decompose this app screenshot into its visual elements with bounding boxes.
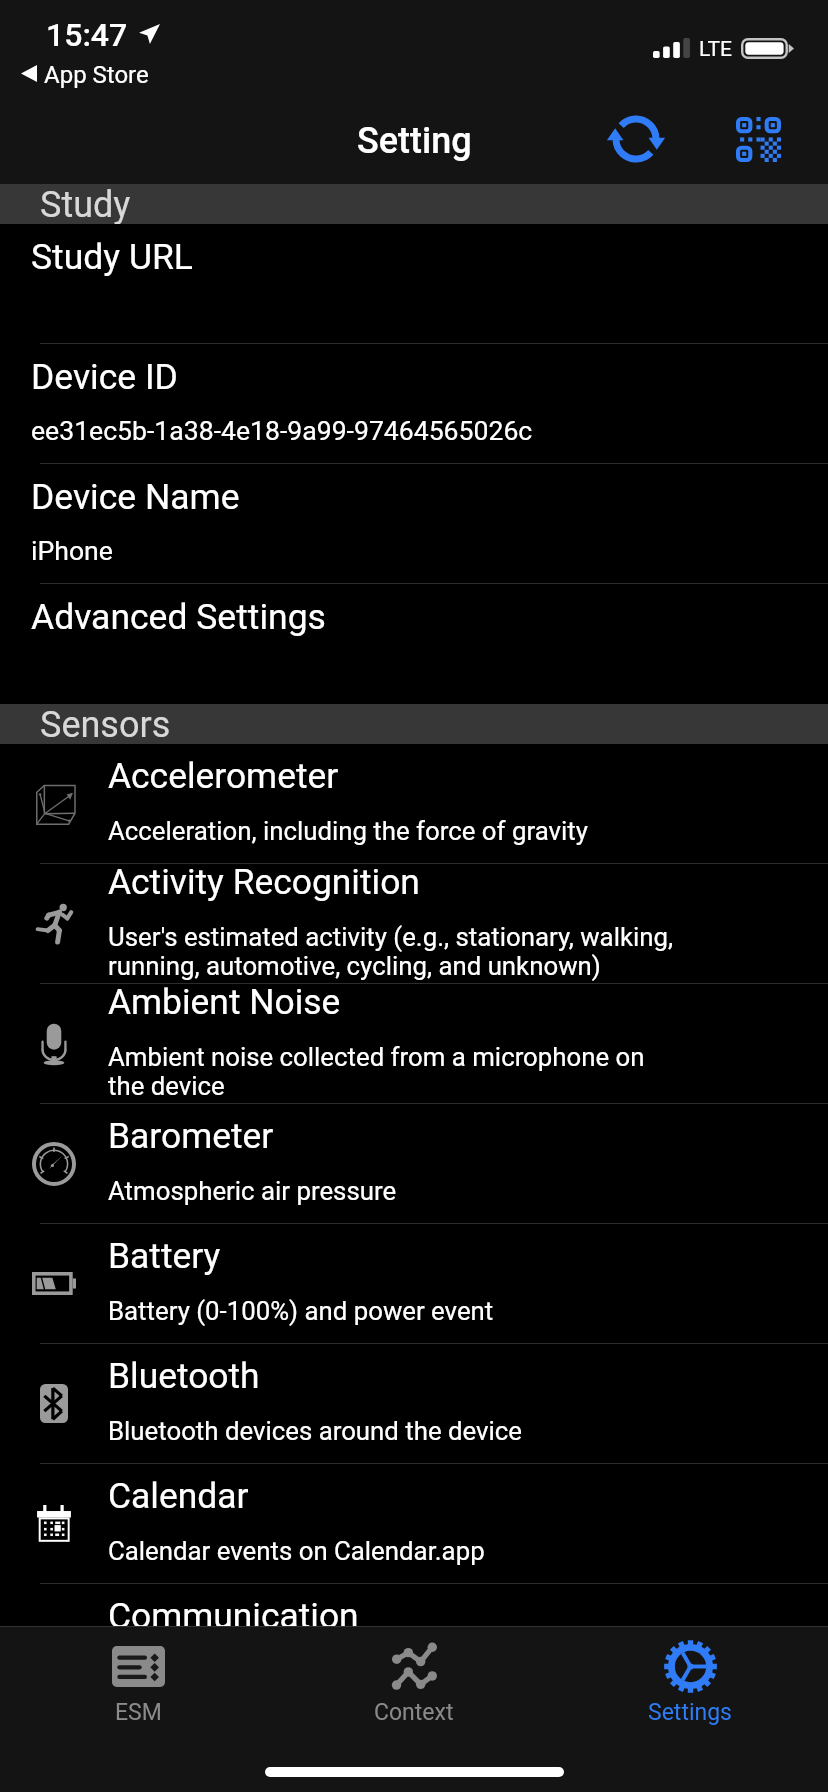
staticText: Study URL xyxy=(31,236,193,278)
staticText: Ambient noise collected from a microphon… xyxy=(108,1042,668,1101)
staticText: Sensors xyxy=(40,704,171,744)
staticText: Study xyxy=(40,184,131,224)
button[interactable]: Accelerometer xyxy=(0,744,828,863)
staticText: App Store xyxy=(44,61,149,89)
staticText: Activity Recognition xyxy=(108,861,420,902)
button[interactable]: Device Name xyxy=(0,464,828,583)
staticText: Bluetooth xyxy=(108,1355,260,1396)
staticText: Device ID xyxy=(31,356,178,398)
staticText: Context xyxy=(374,1699,454,1726)
staticText: LTE xyxy=(699,37,732,62)
button[interactable]: Bluetooth xyxy=(0,1344,828,1463)
button[interactable]: Sync xyxy=(600,103,672,175)
staticText: 15:47 xyxy=(46,16,128,54)
staticText: Acceleration, including the force of gra… xyxy=(108,816,808,846)
button[interactable]: Advanced Settings xyxy=(0,584,828,703)
staticText: Setting xyxy=(357,120,472,162)
staticText: Calendar xyxy=(108,1475,249,1516)
staticText: Bluetooth devices around the device xyxy=(108,1416,808,1446)
staticText: ee31ec5b-1a38-4e18-9a99-97464565026c xyxy=(31,415,533,446)
staticText: Battery xyxy=(108,1235,221,1276)
staticText: ESM xyxy=(115,1699,162,1726)
staticText: Communication xyxy=(108,1595,359,1626)
button[interactable]: Scan QR code xyxy=(722,103,794,175)
button[interactable]: Ambient Noise xyxy=(0,984,828,1103)
staticText: iPhone xyxy=(31,535,113,566)
staticText: User's estimated activity (e.g., station… xyxy=(108,922,708,981)
button[interactable]: Barometer xyxy=(0,1104,828,1223)
staticText: Ambient Noise xyxy=(108,981,341,1022)
staticText: Advanced Settings xyxy=(31,596,326,638)
staticText: Atmospheric air pressure xyxy=(108,1176,808,1206)
button[interactable]: ESM xyxy=(0,1627,276,1726)
staticText: Accelerometer xyxy=(108,755,339,796)
button[interactable]: Communication xyxy=(0,1584,828,1626)
staticText: Battery (0-100%) and power event xyxy=(108,1296,808,1326)
button[interactable]: Battery xyxy=(0,1224,828,1343)
button[interactable]: Context xyxy=(276,1627,552,1726)
button[interactable]: Activity Recognition xyxy=(0,864,828,983)
staticText: Device Name xyxy=(31,476,240,518)
button[interactable]: Calendar xyxy=(0,1464,828,1583)
button[interactable]: Device ID xyxy=(0,344,828,463)
button[interactable]: Settings xyxy=(552,1627,828,1726)
staticText: Barometer xyxy=(108,1115,274,1156)
staticText: Settings xyxy=(648,1699,732,1726)
staticText: Calendar events on Calendar.app xyxy=(108,1536,808,1566)
button[interactable]: Study URL xyxy=(0,224,828,343)
